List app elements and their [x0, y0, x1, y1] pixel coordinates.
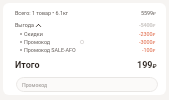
button[interactable]: Скидки — [20, 30, 156, 37]
button[interactable]: Выгода — [15, 21, 156, 29]
staticText: Всего: 1 товар • 6.1кг — [15, 10, 69, 16]
staticText: Выгода — [15, 22, 34, 28]
button[interactable]: Info — [78, 38, 85, 45]
staticText: -3000₽ — [139, 39, 156, 45]
button[interactable]: Промокод — [20, 38, 156, 45]
staticText: Промокод — [22, 82, 48, 88]
staticText: -5400₽ — [139, 22, 156, 28]
button[interactable]: Промокод SALE-AFO — [20, 46, 156, 53]
staticText: -100₽ — [142, 47, 156, 53]
button[interactable]: Промокод — [16, 77, 158, 92]
staticText: Промокод SALE-AFO — [24, 47, 76, 53]
staticText: -2300₽ — [139, 31, 156, 37]
staticText: Промокод — [24, 39, 51, 45]
staticText: Скидки — [24, 31, 43, 37]
staticText: 5599₽ — [141, 10, 156, 16]
staticText: Итого — [15, 60, 40, 71]
staticText: 199₽ — [137, 60, 157, 71]
other: Collapse — [36, 23, 41, 28]
